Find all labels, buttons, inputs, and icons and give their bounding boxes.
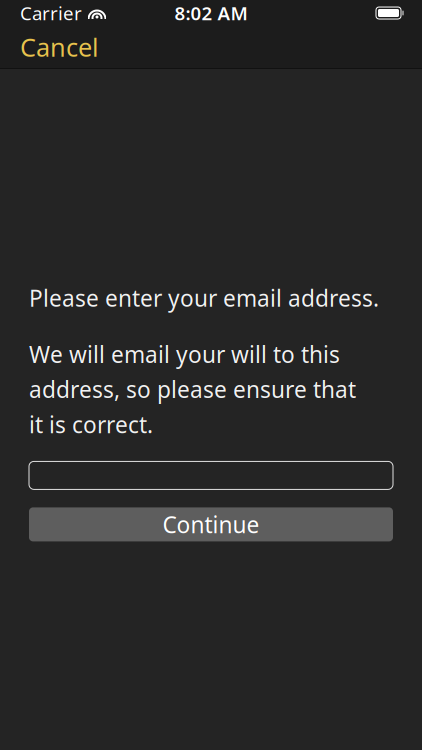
staticText: Carrier	[20, 1, 82, 25]
staticText: 8:02 AM	[174, 1, 247, 25]
staticText: Please enter your email address.	[29, 283, 379, 313]
staticText: Continue	[162, 509, 259, 539]
button[interactable]: Cancel	[0, 20, 119, 74]
staticText: Cancel	[20, 30, 99, 64]
staticText: We will email your will to this address,…	[29, 339, 356, 439]
button[interactable]: Continue	[29, 507, 393, 541]
